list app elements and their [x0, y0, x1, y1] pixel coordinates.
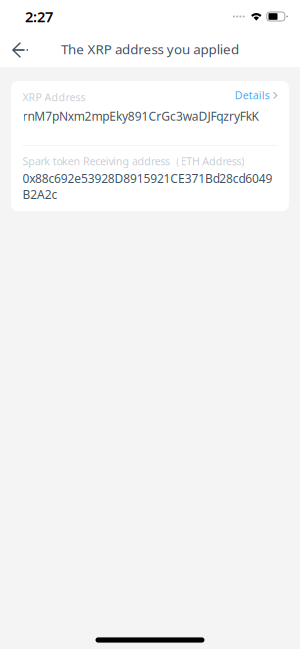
staticText: XRP Address — [22, 90, 85, 104]
staticText: 0x88c692e53928D8915921CE371Bd28cd6049B2A… — [22, 170, 272, 202]
staticText: The XRP address you applied — [61, 40, 239, 58]
button[interactable]: Back — [0, 35, 41, 63]
button[interactable]: Details — [235, 88, 277, 102]
staticText: Spark token Receiving address（ETH Addres… — [22, 154, 244, 168]
staticText: 2:27 — [25, 7, 53, 26]
staticText: Details — [235, 88, 270, 102]
staticText: rnM7pNxm2mpEky891CrGc3waDJFqzryFkK — [22, 108, 258, 124]
